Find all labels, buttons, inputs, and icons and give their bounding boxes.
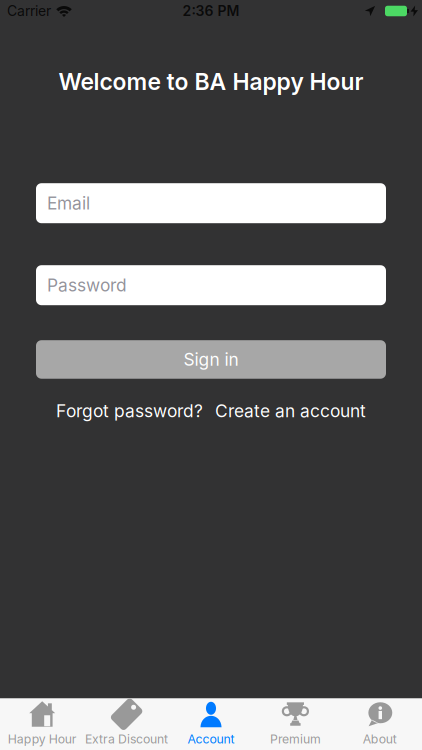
staticText: 2:36 PM <box>182 3 239 19</box>
button[interactable]: Password <box>36 265 386 305</box>
staticText: Happy Hour <box>8 732 77 746</box>
staticText: Welcome to BA Happy Hour <box>58 68 363 95</box>
button[interactable]: Happy Hour <box>0 698 84 750</box>
staticText: About <box>363 732 397 746</box>
staticText: Premium <box>270 732 321 746</box>
staticText: Email <box>47 193 90 213</box>
button[interactable]: Account <box>169 698 253 750</box>
staticText: Create an account <box>215 401 366 421</box>
button[interactable]: Extra Discount <box>84 698 169 750</box>
button[interactable]: Email <box>36 183 386 223</box>
button[interactable]: Premium <box>253 698 338 750</box>
button[interactable]: Forgot password? <box>56 401 203 421</box>
staticText: Carrier <box>7 3 51 19</box>
staticText: Account <box>187 732 234 746</box>
button[interactable]: Sign in <box>36 340 386 379</box>
staticText: Forgot password? <box>56 401 203 421</box>
staticText: Sign in <box>183 349 238 370</box>
staticText: Password <box>47 275 127 295</box>
button[interactable]: About <box>338 698 422 750</box>
button[interactable]: Create an account <box>215 401 366 421</box>
staticText: Extra Discount <box>85 732 168 746</box>
